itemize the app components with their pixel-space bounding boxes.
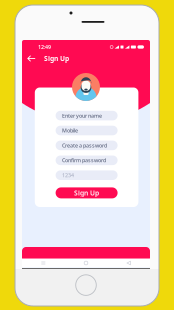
button[interactable]: Sign Up — [56, 187, 118, 198]
button[interactable]: Recents — [22, 261, 65, 265]
button[interactable]: Home — [65, 261, 107, 265]
button[interactable]: Enter your name — [56, 111, 118, 120]
staticText: Confirm password — [62, 157, 106, 164]
staticText: Sign Up — [74, 188, 99, 197]
staticText: Mobile — [62, 127, 78, 134]
staticText: Enter your name — [62, 112, 102, 119]
button[interactable]: Create a password — [56, 141, 118, 150]
staticText: Create a password — [62, 142, 107, 149]
staticText: 1234 — [62, 172, 74, 179]
button[interactable]: Confirm password — [56, 155, 118, 165]
button[interactable]: Mobile — [56, 126, 118, 135]
staticText: 12:49 — [38, 43, 51, 51]
button[interactable]: Back — [107, 261, 150, 265]
staticText: Sign Up — [44, 54, 69, 63]
button[interactable]: 1234 — [56, 170, 118, 180]
button[interactable]: Back — [25, 52, 38, 64]
